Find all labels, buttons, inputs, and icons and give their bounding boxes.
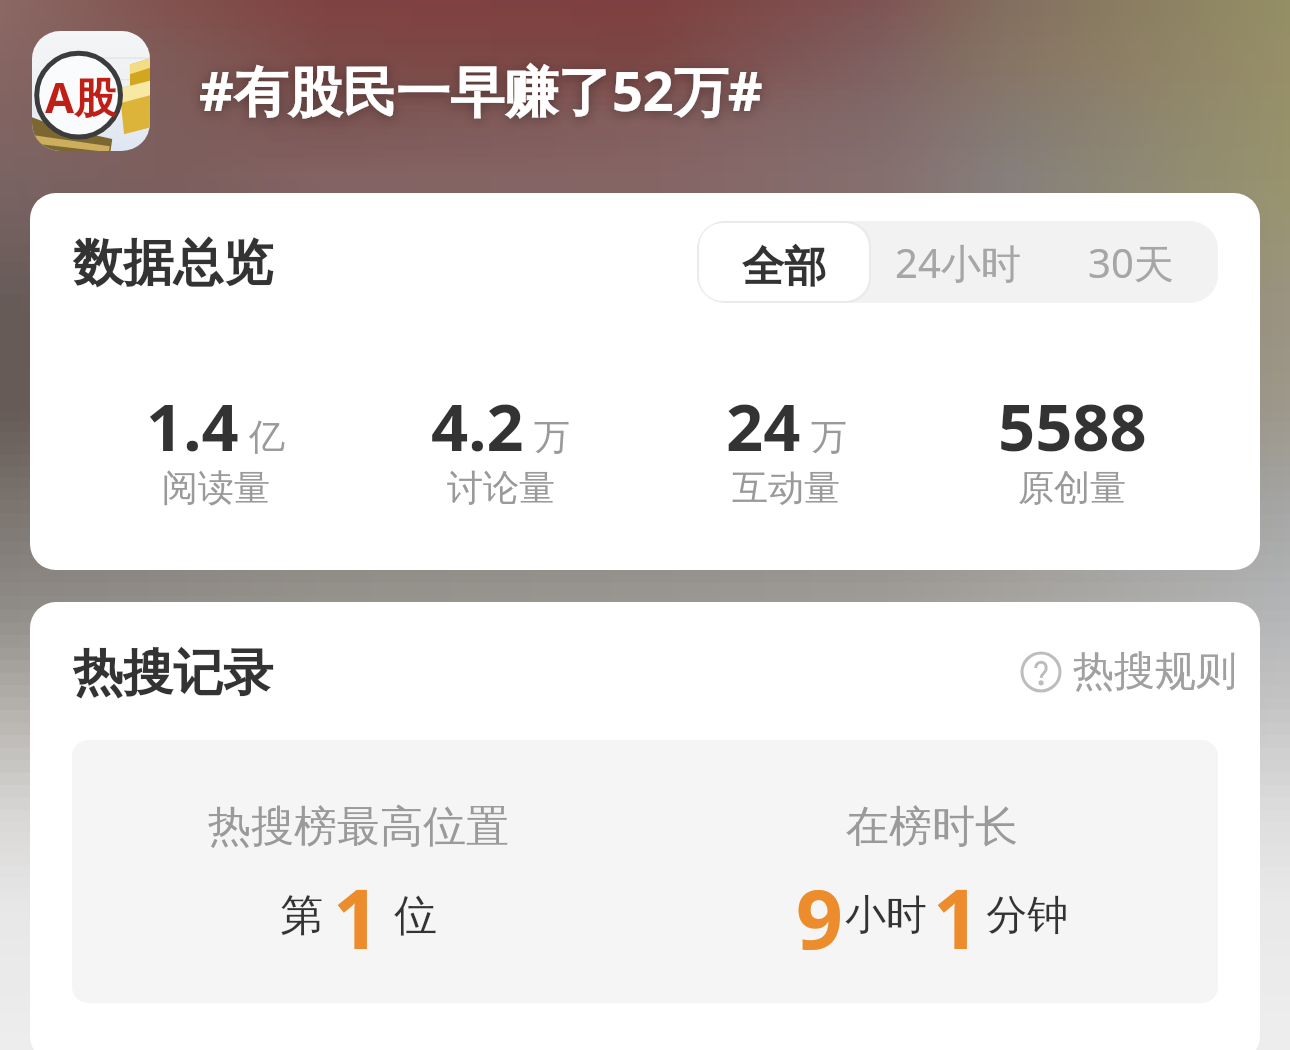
button[interactable]: 24小时 bbox=[871, 221, 1044, 303]
button[interactable]: 4.2 bbox=[358, 382, 643, 516]
staticText: 4.2 bbox=[431, 382, 524, 471]
staticText: 1 bbox=[333, 861, 380, 961]
staticText: 数据总览 bbox=[73, 232, 273, 295]
button[interactable]: 24 bbox=[643, 382, 929, 516]
staticText: 阅读量 bbox=[162, 465, 270, 510]
staticText: 全部 bbox=[742, 241, 826, 294]
button[interactable]: 30天 bbox=[1044, 221, 1218, 303]
staticText: 热搜规则 bbox=[1073, 646, 1237, 698]
staticText: 热搜记录 bbox=[73, 642, 273, 705]
button[interactable]: 热搜规则 bbox=[1015, 646, 1237, 698]
button[interactable]: 1.4 bbox=[73, 382, 358, 516]
staticText: 1.4 bbox=[146, 382, 239, 471]
staticText: 30天 bbox=[1088, 235, 1174, 290]
button[interactable]: #有股民一早赚了52万# bbox=[199, 53, 763, 127]
staticText: 亿 bbox=[249, 414, 285, 459]
staticText: #有股民一早赚了52万# bbox=[199, 53, 763, 127]
button[interactable]: 5588 bbox=[929, 382, 1215, 516]
button[interactable]: 全部 bbox=[699, 223, 869, 301]
staticText: 5588 bbox=[998, 382, 1147, 471]
staticText: 原创量 bbox=[1018, 465, 1126, 510]
staticText: 互动量 bbox=[732, 465, 840, 510]
staticText: 万 bbox=[534, 414, 570, 459]
staticText: 1 bbox=[933, 861, 980, 961]
staticText: 24 bbox=[726, 382, 801, 471]
staticText: 小时 bbox=[845, 890, 927, 942]
staticText: 位 bbox=[394, 889, 437, 943]
button[interactable]: A股 话题图标 bbox=[32, 31, 150, 151]
staticText: 万 bbox=[811, 414, 847, 459]
staticText: 第 bbox=[280, 889, 323, 943]
staticText: 在榜时长 bbox=[846, 800, 1018, 854]
staticText: 热搜榜最高位置 bbox=[208, 800, 509, 854]
staticText: 讨论量 bbox=[447, 465, 555, 510]
staticText: A股 bbox=[45, 68, 117, 125]
staticText: 分钟 bbox=[986, 890, 1068, 942]
staticText: 24小时 bbox=[895, 235, 1021, 290]
staticText: 9 bbox=[796, 861, 843, 961]
